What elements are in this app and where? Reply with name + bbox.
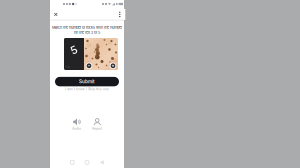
button[interactable]: Back: [96, 158, 107, 166]
staticText: five: [65, 66, 70, 69]
staticText: Audio: [72, 127, 81, 130]
staticText: on the left 2 of 5: [74, 30, 100, 35]
button[interactable]: Home: [81, 158, 92, 166]
button[interactable]: Audio: [70, 118, 84, 130]
staticText: 5: [70, 43, 77, 56]
button[interactable]: Add one rock: [110, 63, 116, 69]
staticText: Report: [92, 127, 102, 130]
button[interactable]: More options: [114, 9, 125, 20]
button[interactable]: Report: [90, 118, 104, 130]
staticText: Match the number of rocks with the numbe…: [52, 25, 122, 30]
staticText: Submit: [79, 79, 95, 84]
button[interactable]: Recents: [67, 158, 78, 166]
staticText: I don't know / Skip this one: [65, 87, 109, 91]
button[interactable]: Close: [50, 9, 61, 20]
button[interactable]: Submit: [55, 77, 119, 86]
button[interactable]: Remove one rock: [86, 63, 92, 69]
